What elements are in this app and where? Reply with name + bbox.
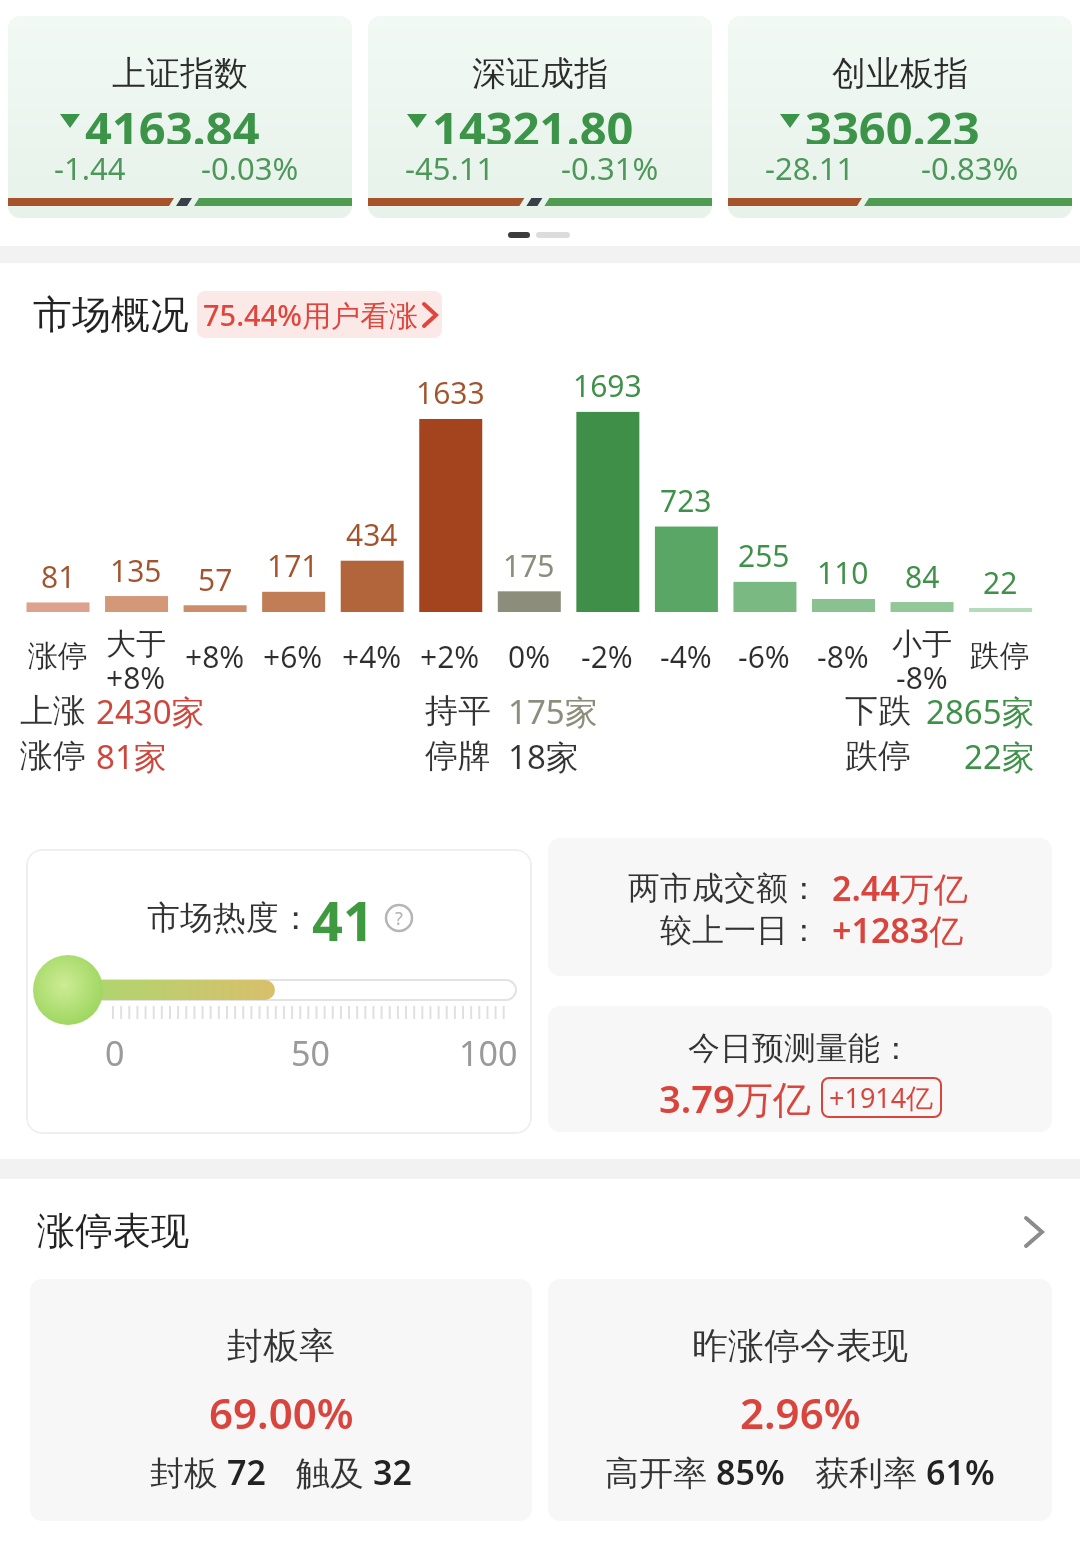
staticText: 下跌 [845, 690, 911, 732]
staticText: 50 [291, 1030, 330, 1076]
staticText: +1914亿 [829, 1079, 934, 1116]
staticText: 171 [267, 545, 319, 586]
staticText: -1.44 [54, 147, 126, 189]
staticText: 涨停 [20, 735, 86, 777]
staticText: 今日预测量能： [688, 1028, 912, 1068]
button[interactable]: 市场热度： [26, 849, 532, 1134]
staticText: -2% [581, 636, 633, 677]
staticText: -6% [738, 636, 790, 677]
staticText: 获利率 [815, 1449, 926, 1495]
staticText: 小于 [892, 625, 952, 663]
staticText: 0 [105, 1030, 125, 1076]
staticText: 4163.84 [85, 96, 260, 144]
staticText: 持平 [425, 690, 491, 732]
staticText: 2430家 [96, 689, 205, 734]
staticText: +1283亿 [832, 907, 964, 953]
staticText: 22家 [964, 734, 1035, 779]
staticText: +6% [263, 636, 323, 677]
button[interactable]: 昨涨停今表现 [548, 1279, 1052, 1521]
staticText: 69.00% [209, 1384, 354, 1441]
staticText: -45.11 [405, 147, 495, 189]
staticText: 3.79万亿 [659, 1072, 811, 1122]
staticText: 1633 [416, 372, 485, 413]
staticText: 75.44%用户看涨 [203, 295, 418, 335]
staticText: -0.31% [561, 147, 659, 189]
staticText: 255 [738, 535, 790, 576]
staticText: 2.96% [740, 1384, 861, 1441]
staticText: 81 [41, 556, 76, 597]
staticText: 2865家 [926, 689, 1035, 734]
staticText: 市场热度： [147, 897, 312, 939]
staticText: 32 [373, 1449, 412, 1495]
staticText: 100 [459, 1030, 518, 1076]
staticText: 81家 [96, 734, 167, 779]
staticText: 2.44万亿 [832, 865, 968, 911]
staticText: 14321.80 [432, 96, 634, 144]
staticText: 84 [905, 556, 940, 597]
staticText: -0.83% [921, 147, 1019, 189]
staticText: 110 [817, 552, 869, 593]
staticText: +8% [106, 657, 166, 698]
staticText: -8% [817, 636, 869, 677]
staticText: 昨涨停今表现 [692, 1323, 908, 1368]
staticText: 大于 [106, 625, 166, 663]
staticText: 3360.23 [805, 96, 980, 144]
staticText: -8% [896, 657, 948, 698]
staticText: 停牌 [425, 735, 491, 777]
staticText: 723 [660, 480, 712, 521]
button[interactable]: 创业板指 [728, 16, 1072, 218]
staticText: ? [395, 906, 403, 931]
button[interactable]: 75.44%用户看涨 [197, 291, 442, 338]
staticText: 61% [926, 1449, 995, 1495]
staticText: 0% [508, 636, 551, 677]
staticText: 上涨 [20, 690, 86, 732]
staticText: 触及 [296, 1449, 373, 1495]
staticText: 18家 [508, 734, 579, 779]
staticText: 85% [716, 1449, 785, 1495]
staticText: 封板 [150, 1449, 227, 1495]
button[interactable]: 今日预测量能： [548, 1006, 1052, 1132]
button[interactable]: 上证指数 [8, 16, 352, 218]
staticText: 市场概况 [33, 290, 189, 339]
staticText: 57 [198, 559, 233, 600]
staticText: 高开率 [605, 1449, 716, 1495]
staticText: +2% [420, 636, 480, 677]
staticText: -4% [660, 636, 712, 677]
staticText: 22 [983, 562, 1018, 603]
button[interactable]: 封板率 [30, 1279, 532, 1521]
staticText: -28.11 [765, 147, 855, 189]
staticText: 1693 [573, 365, 642, 406]
staticText: +8% [185, 636, 245, 677]
staticText: 跌停 [970, 637, 1030, 675]
staticText: 深证成指 [472, 52, 608, 92]
button[interactable]: 两市成交额： [548, 838, 1052, 976]
staticText: 跌停 [845, 735, 911, 777]
staticText: 两市成交额： [628, 868, 820, 908]
staticText: -0.03% [201, 147, 299, 189]
staticText: 涨停表现 [37, 1207, 189, 1255]
button[interactable] [0, 1196, 1080, 1266]
staticText: 72 [227, 1449, 266, 1495]
staticText: 较上一日： [660, 910, 820, 950]
staticText: 434 [346, 514, 398, 555]
staticText: 135 [110, 550, 162, 591]
staticText: 175 [503, 545, 555, 586]
staticText: 创业板指 [832, 52, 968, 92]
staticText: +4% [342, 636, 402, 677]
button[interactable]: 深证成指 [368, 16, 712, 218]
staticText: 涨停 [28, 637, 88, 675]
staticText: 封板率 [227, 1323, 335, 1368]
staticText: 41 [312, 883, 374, 953]
staticText: 175家 [508, 689, 598, 734]
staticText: 上证指数 [112, 52, 248, 92]
